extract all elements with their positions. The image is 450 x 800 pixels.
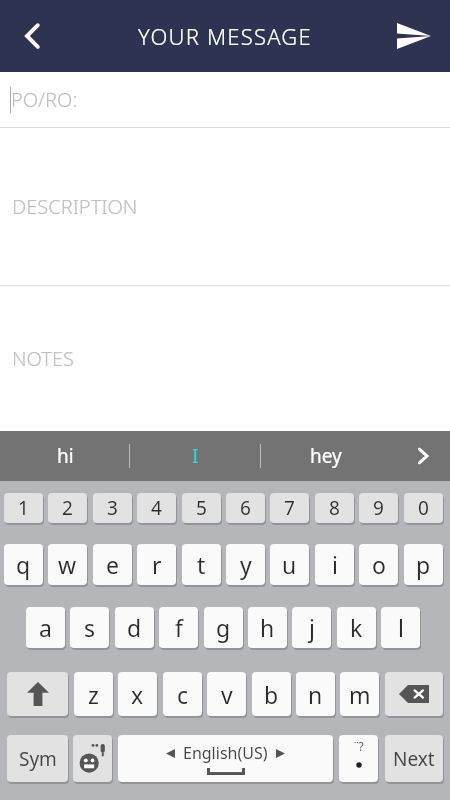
staticText: g	[216, 612, 231, 643]
button[interactable]: 5	[182, 493, 221, 523]
button[interactable]: Space, English (US)	[118, 735, 333, 782]
button[interactable]: More suggestions	[395, 431, 450, 481]
button[interactable]: a	[26, 607, 65, 648]
staticText: n	[308, 679, 323, 710]
button[interactable]: s	[70, 607, 109, 648]
button[interactable]: Period	[339, 735, 378, 782]
button[interactable]: k	[337, 607, 376, 648]
staticText: 1	[18, 495, 29, 521]
button[interactable]: r	[137, 544, 176, 585]
staticText: b	[264, 679, 279, 710]
staticText: Next	[393, 746, 435, 772]
staticText: 2	[62, 495, 73, 521]
staticText: p	[416, 549, 431, 580]
staticText: 5	[196, 495, 207, 521]
staticText: hi	[57, 443, 74, 469]
button[interactable]: l	[381, 607, 420, 648]
staticText: 3	[107, 495, 118, 521]
staticText: 0	[418, 495, 429, 521]
button[interactable]: Shift	[7, 672, 68, 716]
button[interactable]: 6	[226, 493, 265, 523]
staticText: t	[197, 549, 206, 580]
button[interactable]: Backspace	[385, 672, 443, 716]
button[interactable]: g	[204, 607, 243, 648]
button[interactable]: c	[163, 672, 202, 716]
staticText: I	[192, 443, 199, 469]
button[interactable]: x	[118, 672, 157, 716]
staticText: 7	[284, 495, 295, 521]
button[interactable]: d	[115, 607, 154, 648]
button[interactable]: 2	[48, 493, 87, 523]
staticText: PO/RO:	[11, 86, 78, 113]
staticText: u	[282, 549, 297, 580]
button[interactable]: b	[252, 672, 291, 716]
staticText: s	[84, 612, 96, 643]
staticText: YOUR MESSAGE	[138, 21, 312, 51]
staticText: m	[349, 679, 371, 710]
staticText: r	[152, 549, 162, 580]
button[interactable]: Back	[0, 0, 66, 72]
staticText: d	[127, 612, 142, 643]
staticText: DESCRIPTION	[12, 193, 138, 220]
button[interactable]: hey	[261, 431, 391, 481]
button[interactable]: n	[296, 672, 335, 716]
staticText: q	[16, 549, 31, 580]
button[interactable]: 4	[137, 493, 176, 523]
staticText: k	[350, 612, 363, 643]
button[interactable]: Send	[378, 0, 450, 72]
staticText: 4	[151, 495, 162, 521]
staticText: f	[175, 612, 183, 643]
button[interactable]: h	[248, 607, 287, 648]
staticText: c	[177, 679, 189, 710]
staticText: English(US)	[183, 742, 268, 764]
button[interactable]: Next	[385, 735, 443, 782]
button[interactable]: z	[74, 672, 113, 716]
staticText: l	[398, 612, 404, 643]
staticText: Sym	[19, 746, 57, 772]
button[interactable]: j	[292, 607, 331, 648]
button[interactable]: u	[270, 544, 309, 585]
button[interactable]: v	[207, 672, 246, 716]
staticText: x	[131, 679, 144, 710]
staticText: hey	[310, 443, 342, 469]
button[interactable]: 9	[359, 493, 398, 523]
staticText: h	[260, 612, 275, 643]
button[interactable]: 7	[270, 493, 309, 523]
button[interactable]: p	[404, 544, 443, 585]
staticText: 6	[240, 495, 251, 521]
button[interactable]: PO/RO:	[0, 72, 450, 127]
button[interactable]: Emoji and voice input	[73, 735, 112, 782]
button[interactable]: I	[130, 431, 260, 481]
staticText: NOTES	[12, 345, 74, 372]
staticText: ˙˙?	[354, 738, 364, 754]
button[interactable]: y	[226, 544, 265, 585]
staticText: a	[39, 612, 52, 643]
button[interactable]: m	[340, 672, 379, 716]
button[interactable]: 3	[93, 493, 132, 523]
button[interactable]: w	[48, 544, 87, 585]
staticText: i	[332, 549, 338, 580]
button[interactable]: 1	[4, 493, 43, 523]
staticText: y	[240, 549, 252, 580]
staticText: e	[106, 549, 119, 580]
staticText: o	[372, 549, 386, 580]
button[interactable]: hi	[0, 431, 130, 481]
staticText: z	[88, 679, 99, 710]
staticText: 9	[373, 495, 384, 521]
staticText: w	[58, 549, 77, 580]
button[interactable]: o	[359, 544, 398, 585]
staticText: 8	[329, 495, 340, 521]
button[interactable]: i	[315, 544, 354, 585]
button[interactable]: Symbols	[7, 735, 68, 782]
button[interactable]: f	[159, 607, 198, 648]
button[interactable]: 8	[315, 493, 354, 523]
button[interactable]: e	[93, 544, 132, 585]
button[interactable]: NOTES	[0, 286, 450, 431]
staticText: v	[221, 679, 233, 710]
button[interactable]: q	[4, 544, 43, 585]
button[interactable]: 0	[404, 493, 443, 523]
staticText: j	[309, 612, 315, 643]
button[interactable]: DESCRIPTION	[0, 128, 450, 285]
button[interactable]: t	[182, 544, 221, 585]
